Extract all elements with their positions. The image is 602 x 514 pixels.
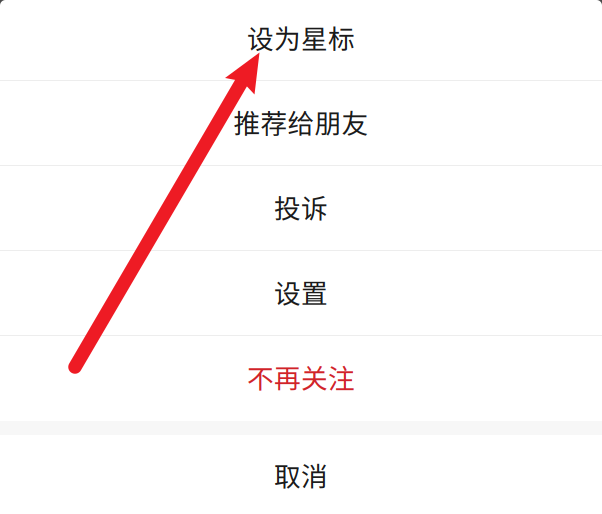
button[interactable]: 设为星标 [0, 0, 602, 80]
staticText: 投诉 [274, 187, 328, 226]
button[interactable]: 设置 [0, 251, 602, 335]
button[interactable]: 取消 [0, 435, 602, 514]
staticText: 设置 [274, 272, 328, 311]
button[interactable]: 不再关注 [0, 336, 602, 421]
staticText: 推荐给朋友 [233, 102, 368, 141]
staticText: 不再关注 [247, 357, 355, 396]
button[interactable]: 推荐给朋友 [0, 81, 602, 165]
staticText: 取消 [274, 455, 328, 494]
staticText: 设为星标 [247, 18, 355, 56]
button[interactable]: 投诉 [0, 166, 602, 250]
